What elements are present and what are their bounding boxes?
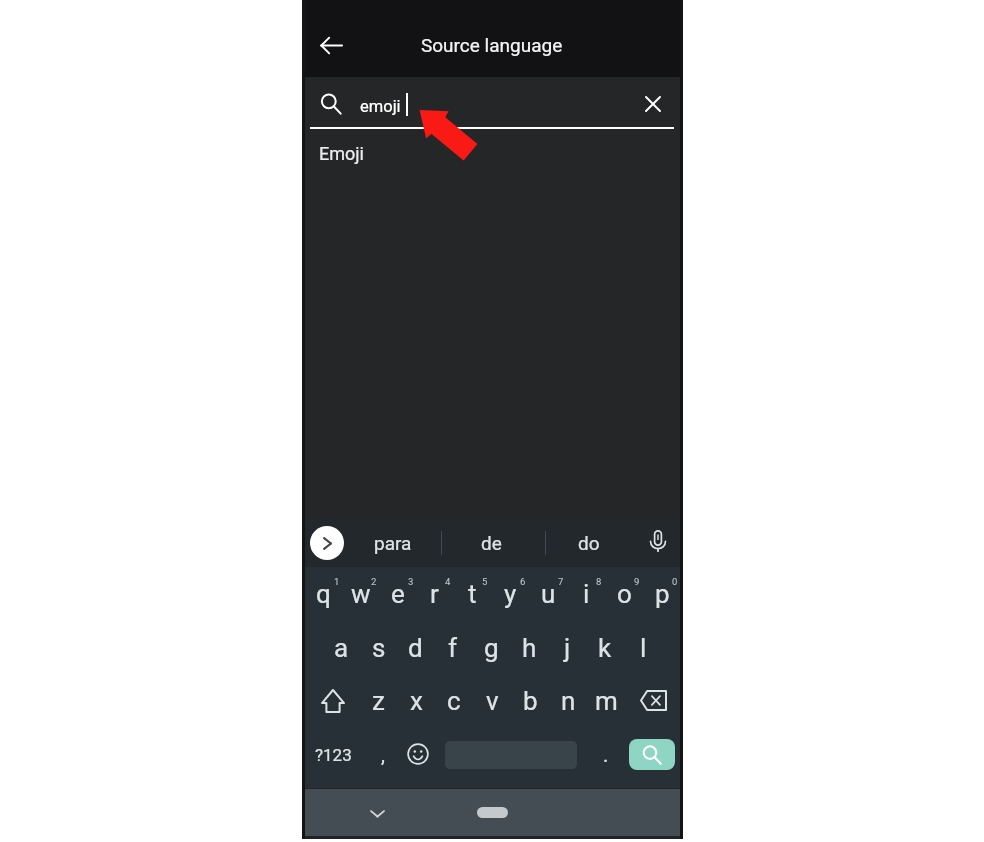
button[interactable]: n — [549, 674, 587, 727]
button[interactable]: j — [548, 621, 586, 674]
staticText: r — [430, 579, 439, 609]
button[interactable]: f — [434, 621, 472, 674]
staticText: l — [640, 633, 647, 663]
staticText: p — [655, 579, 670, 609]
staticText: v — [486, 686, 499, 716]
button[interactable]: i — [567, 569, 605, 621]
button[interactable]: o — [605, 569, 643, 621]
button[interactable]: Search — [317, 90, 345, 118]
staticText: g — [484, 633, 499, 663]
button[interactable]: r — [416, 569, 453, 621]
staticText: 3 — [408, 576, 414, 587]
button[interactable]: l — [624, 621, 662, 674]
button[interactable]: w — [342, 569, 379, 621]
button[interactable]: h — [510, 621, 548, 674]
staticText: , — [381, 743, 385, 766]
staticText: 5 — [482, 576, 488, 587]
staticText: b — [523, 686, 538, 716]
button[interactable]: g — [472, 621, 510, 674]
staticText: i — [583, 579, 590, 609]
button[interactable]: Voice input — [643, 526, 673, 556]
button[interactable]: Emoji keyboard — [399, 727, 437, 780]
staticText: h — [522, 633, 537, 663]
button[interactable]: a — [323, 621, 360, 674]
button[interactable]: s — [360, 621, 397, 674]
button[interactable]: x — [397, 674, 435, 727]
staticText: w — [351, 579, 371, 609]
staticText: 7 — [558, 576, 564, 587]
button[interactable]: Back — [311, 25, 351, 65]
button[interactable]: v — [473, 674, 511, 727]
button[interactable]: . — [588, 727, 624, 780]
button[interactable]: Clear search — [638, 89, 668, 119]
button[interactable]: m — [587, 674, 625, 727]
button[interactable]: y — [491, 569, 529, 621]
staticText: 4 — [445, 576, 451, 587]
staticText: emoji — [360, 97, 401, 116]
button[interactable]: c — [435, 674, 473, 727]
button[interactable]: t — [453, 569, 491, 621]
staticText: 6 — [520, 576, 526, 587]
staticText: d — [408, 633, 423, 663]
button[interactable]: u — [529, 569, 567, 621]
staticText: 1 — [334, 576, 340, 587]
staticText: e — [391, 579, 405, 609]
staticText: 0 — [672, 576, 678, 587]
button[interactable]: Emoji — [302, 130, 682, 176]
staticText: y — [504, 579, 517, 609]
staticText: c — [447, 686, 461, 716]
button[interactable]: para — [361, 519, 425, 567]
button[interactable]: d — [397, 621, 434, 674]
staticText: j — [564, 633, 571, 663]
button[interactable]: Search — [629, 739, 675, 770]
staticText: f — [448, 633, 458, 663]
button[interactable]: b — [511, 674, 549, 727]
staticText: u — [541, 579, 556, 609]
staticText: a — [334, 633, 349, 663]
staticText: m — [595, 686, 618, 716]
button[interactable]: ?123 — [309, 727, 357, 780]
staticText: s — [372, 633, 386, 663]
button[interactable]: Backspace — [625, 674, 681, 727]
button[interactable]: Shift — [305, 674, 360, 727]
staticText: 8 — [596, 576, 602, 587]
staticText: z — [372, 686, 385, 716]
staticText: x — [410, 686, 423, 716]
button[interactable]: Expand suggestions — [310, 526, 344, 560]
button[interactable]: , — [364, 727, 402, 780]
staticText: de — [481, 532, 502, 554]
staticText: ?123 — [315, 745, 352, 765]
staticText: Emoji — [319, 143, 364, 164]
staticText: q — [316, 579, 331, 609]
staticText: 9 — [634, 576, 640, 587]
button[interactable]: q — [305, 569, 342, 621]
staticText: Source language — [421, 34, 563, 56]
button[interactable]: k — [586, 621, 624, 674]
staticText: para — [374, 532, 412, 554]
button[interactable]: Hide keyboard — [361, 797, 393, 829]
button[interactable]: do — [557, 519, 621, 567]
button[interactable]: de — [459, 519, 523, 567]
staticText: n — [561, 686, 576, 716]
button[interactable]: p — [643, 569, 681, 621]
button[interactable]: z — [360, 674, 397, 727]
staticText: . — [603, 743, 609, 766]
staticText: o — [617, 579, 632, 609]
staticText: t — [468, 579, 477, 609]
button[interactable]: e — [379, 569, 416, 621]
staticText: 2 — [371, 576, 377, 587]
staticText: k — [598, 633, 612, 663]
staticText: do — [578, 532, 600, 554]
button[interactable]: Home — [477, 807, 508, 818]
